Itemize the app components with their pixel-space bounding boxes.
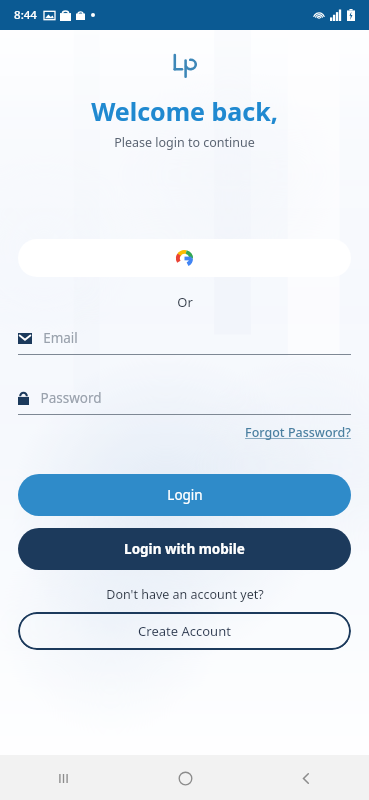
- button[interactable]: Create Account: [18, 612, 351, 650]
- staticText: Login with mobile: [124, 540, 245, 558]
- staticText: Password: [40, 389, 102, 407]
- button[interactable]: Login with mobile: [18, 528, 351, 570]
- button[interactable]: Back: [289, 761, 323, 795]
- button[interactable]: Login: [18, 474, 351, 516]
- button[interactable]: Home: [168, 761, 202, 795]
- button[interactable]: Forgot Password?: [245, 424, 351, 441]
- staticText: Welcome back,: [91, 94, 278, 128]
- staticText: Create Account: [138, 622, 231, 640]
- staticText: Please login to continue: [114, 134, 255, 151]
- staticText: Login: [167, 486, 203, 504]
- staticText: Or: [177, 293, 193, 311]
- staticText: 8:44: [14, 7, 37, 23]
- staticText: Don't have an account yet?: [106, 586, 264, 603]
- button[interactable]: Sign in with Google: [18, 239, 351, 277]
- staticText: Forgot Password?: [245, 424, 351, 441]
- button[interactable]: Recent apps: [46, 761, 80, 795]
- staticText: Email: [43, 329, 78, 347]
